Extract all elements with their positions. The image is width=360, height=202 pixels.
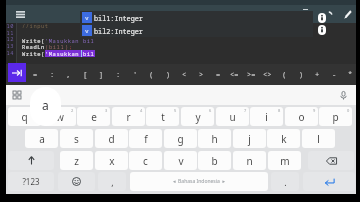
staticText: ?123: [22, 176, 40, 187]
button[interactable]: Shift: [8, 151, 54, 170]
staticText: 10: [4, 22, 14, 29]
button[interactable]: +: [309, 64, 326, 85]
button[interactable]: Info: [318, 25, 326, 35]
button[interactable]: e: [77, 107, 110, 126]
staticText: m: [280, 154, 290, 168]
staticText: h: [211, 132, 218, 146]
staticText: p: [332, 110, 339, 124]
staticText: (: [282, 70, 287, 80]
button[interactable]: =: [27, 64, 44, 85]
staticText: 'Masukkan bil: [45, 50, 95, 57]
staticText: t: [161, 110, 165, 124]
button[interactable]: Backspace: [308, 151, 354, 170]
staticText: i: [265, 110, 268, 124]
button[interactable]: j: [233, 129, 266, 148]
button[interactable]: Enter: [303, 172, 355, 191]
button[interactable]: h: [198, 129, 231, 148]
button[interactable]: n: [233, 151, 266, 170]
button[interactable]: ?123: [8, 172, 54, 191]
button[interactable]: m: [268, 151, 301, 170]
button[interactable]: Toolbar: [10, 88, 24, 102]
staticText: 3: [105, 108, 108, 113]
button[interactable]: v: [80, 12, 313, 23]
staticText: c: [143, 154, 148, 168]
staticText: <>: [263, 70, 272, 80]
staticText: f: [144, 132, 148, 146]
button[interactable]: :: [110, 64, 127, 85]
staticText: [: [83, 70, 88, 80]
staticText: Write(: [22, 50, 45, 57]
staticText: Write(: [22, 37, 45, 44]
button[interactable]: ': [127, 64, 144, 85]
button[interactable]: ]: [93, 64, 110, 85]
staticText: -: [332, 70, 337, 80]
staticText: 8: [278, 108, 281, 113]
button[interactable]: <: [176, 64, 193, 85]
button[interactable]: [: [77, 64, 94, 85]
staticText: 6: [209, 108, 212, 113]
staticText: (: [45, 43, 49, 50]
button[interactable]: Info: [318, 13, 326, 23]
staticText: k: [281, 132, 287, 146]
button[interactable]: (: [276, 64, 293, 85]
button[interactable]: .: [271, 172, 299, 191]
button[interactable]: <=: [226, 64, 243, 85]
button[interactable]: Edit: [340, 6, 356, 22]
button[interactable]: s: [60, 129, 93, 148]
button[interactable]: =: [210, 64, 227, 85]
button[interactable]: Tab: [8, 63, 26, 82]
staticText: 4: [140, 108, 143, 113]
button[interactable]: ,: [98, 172, 126, 191]
button[interactable]: Space: [130, 172, 268, 191]
staticText: 'Masukkan bil: [45, 37, 95, 44]
button[interactable]: z: [60, 151, 93, 170]
button[interactable]: d: [95, 129, 128, 148]
button[interactable]: u: [216, 107, 249, 126]
staticText: 0: [347, 108, 350, 113]
button[interactable]: (: [143, 64, 160, 85]
button[interactable]: v: [164, 151, 197, 170]
button[interactable]: -: [326, 64, 343, 85]
button[interactable]: v: [80, 25, 313, 36]
button[interactable]: Menu: [11, 6, 29, 22]
staticText: y: [195, 110, 201, 124]
button[interactable]: Voice input: [336, 88, 350, 102]
button[interactable]: o: [285, 107, 318, 126]
staticText: g: [177, 132, 184, 146]
button[interactable]: k: [267, 129, 300, 148]
button[interactable]: l: [302, 129, 335, 148]
button[interactable]: ): [293, 64, 310, 85]
button[interactable]: ,: [60, 64, 77, 85]
staticText: 14: [4, 49, 14, 56]
staticText: v: [85, 27, 89, 35]
staticText: *: [348, 70, 353, 80]
staticText: =: [216, 70, 221, 80]
button[interactable]: a: [25, 129, 58, 148]
staticText: >: [199, 70, 204, 80]
staticText: ': [133, 70, 138, 80]
button[interactable]: i: [250, 107, 283, 126]
button[interactable]: t: [146, 107, 179, 126]
button[interactable]: >: [193, 64, 210, 85]
staticText: 11: [4, 29, 14, 36]
button[interactable]: p: [319, 107, 352, 126]
staticText: =: [33, 70, 38, 80]
button[interactable]: f: [129, 129, 162, 148]
button[interactable]: <>: [259, 64, 276, 85]
button[interactable]: y: [181, 107, 214, 126]
button[interactable]: q: [8, 107, 41, 126]
staticText: 13: [4, 42, 14, 49]
button[interactable]: :: [44, 64, 61, 85]
button[interactable]: >=: [243, 64, 260, 85]
button[interactable]: r: [112, 107, 145, 126]
button[interactable]: b: [198, 151, 231, 170]
button[interactable]: c: [129, 151, 162, 170]
staticText: .: [284, 176, 287, 188]
button[interactable]: w: [43, 107, 76, 126]
button[interactable]: Emoji: [58, 172, 95, 191]
button[interactable]: g: [164, 129, 197, 148]
button[interactable]: ): [160, 64, 177, 85]
button[interactable]: x: [95, 151, 128, 170]
button[interactable]: *: [342, 64, 359, 85]
